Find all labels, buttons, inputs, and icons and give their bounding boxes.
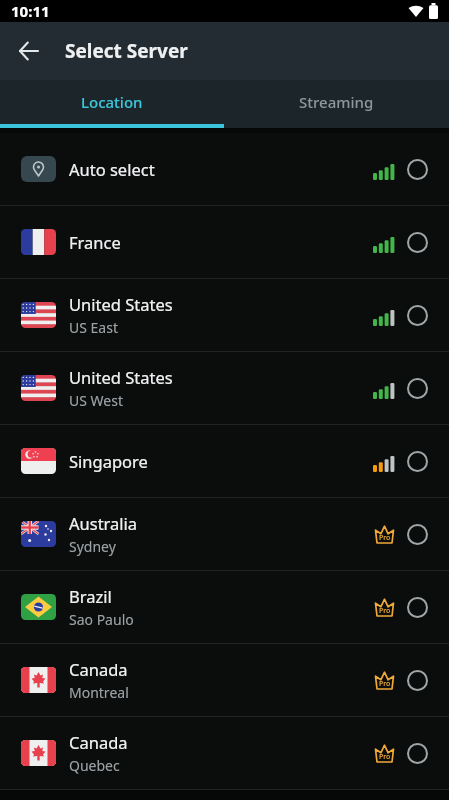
staticText: Pro [379, 533, 391, 543]
staticText: Pro [379, 606, 391, 616]
staticText: Brazil [69, 585, 112, 607]
staticText: Location [81, 92, 143, 112]
button[interactable]: United States [0, 352, 449, 424]
button[interactable]: Streaming [224, 80, 449, 124]
staticText: Canada [69, 658, 128, 680]
staticText: Pro [379, 679, 391, 689]
staticText: Pro [379, 752, 391, 762]
button[interactable]: Brazil [0, 571, 449, 643]
staticText: Sao Paulo [69, 610, 134, 629]
staticText: United States [69, 293, 173, 315]
staticText: France [69, 231, 121, 253]
staticText: Australia [69, 512, 138, 534]
button[interactable]: Location [0, 80, 224, 124]
button[interactable] [0, 22, 58, 80]
button[interactable]: Singapore [0, 425, 449, 497]
staticText: US East [69, 318, 118, 337]
staticText: Montreal [69, 683, 129, 702]
staticText: Sydney [69, 537, 116, 556]
staticText: 10:11 [11, 1, 50, 21]
button[interactable]: Canada [0, 717, 449, 789]
staticText: Auto select [69, 158, 155, 180]
button[interactable]: Australia [0, 498, 449, 570]
staticText: US West [69, 391, 123, 410]
staticText: United States [69, 366, 173, 388]
staticText: Streaming [299, 92, 374, 112]
staticText: Quebec [69, 756, 120, 775]
staticText: Singapore [69, 450, 148, 472]
button[interactable]: Auto select [0, 133, 449, 205]
button[interactable]: Canada [0, 644, 449, 716]
button[interactable]: France [0, 206, 449, 278]
staticText: Canada [69, 731, 128, 753]
button[interactable]: United States [0, 279, 449, 351]
staticText: Select Server [65, 38, 188, 64]
